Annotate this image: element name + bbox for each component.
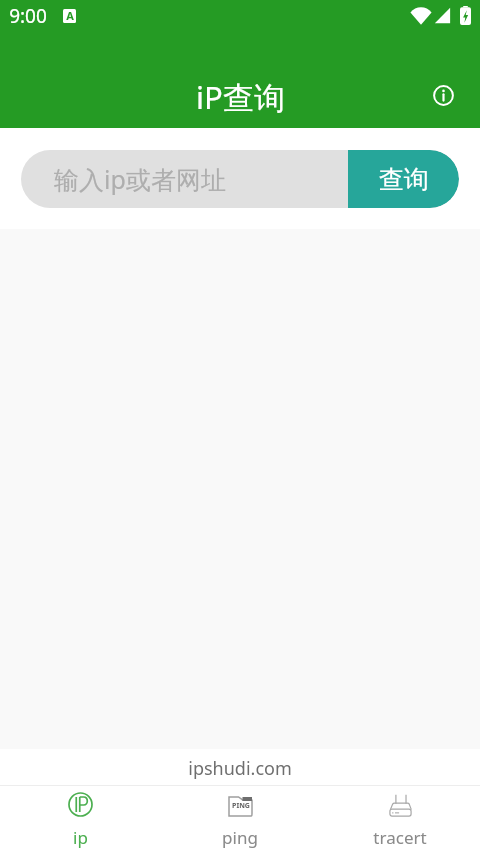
staticText: PING: [232, 801, 250, 811]
staticText: ping: [222, 826, 258, 849]
button[interactable]: 查询: [348, 150, 459, 208]
button[interactable]: 输入ip或者网址: [54, 150, 348, 208]
staticText: tracert: [373, 826, 427, 849]
staticText: A: [66, 9, 74, 22]
button[interactable]: PING: [160, 786, 320, 852]
staticText: 输入ip或者网址: [54, 162, 226, 196]
button[interactable]: Info: [422, 74, 464, 116]
staticText: 9:00: [9, 3, 47, 29]
staticText: ip: [73, 826, 88, 849]
staticText: ipshudi.com: [188, 756, 292, 781]
button[interactable]: ip: [0, 786, 160, 852]
staticText: 查询: [379, 164, 429, 195]
button[interactable]: tracert: [320, 786, 480, 852]
staticText: iP查询: [196, 76, 285, 118]
